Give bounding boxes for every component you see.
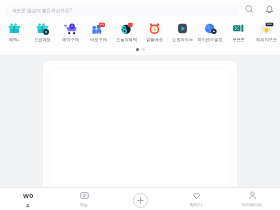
button[interactable]: 예약구매 (56, 18, 84, 44)
button[interactable]: 마이페이지 (224, 188, 280, 210)
staticText: wo (23, 191, 34, 201)
button[interactable]: 오픈예정 (28, 18, 56, 44)
staticText: 혜택+ (9, 37, 20, 43)
staticText: 찜하기 (190, 202, 202, 207)
button[interactable]: 새 글 작성 (112, 188, 168, 210)
staticText: 예약구매 (62, 37, 79, 42)
button[interactable]: 알뜰배송 (140, 18, 168, 44)
staticText: 새로운 일상이 필요하신가요? (12, 7, 72, 13)
button[interactable]: Notifications (259, 0, 280, 18)
staticText: 홈 (26, 203, 30, 208)
button[interactable]: 오늘의혜택 (112, 18, 140, 44)
button[interactable]: 찜하기 (168, 188, 224, 210)
button[interactable]: 하이엔드밀킷 (196, 18, 224, 44)
staticText: 쇼핑라이브 (172, 37, 193, 42)
staticText: 쿠폰존 (232, 37, 245, 42)
button[interactable]: 바로구매 (84, 18, 112, 44)
button[interactable]: 메뉴 (56, 188, 112, 210)
staticText: 메뉴 (80, 202, 88, 207)
button[interactable]: wo (0, 188, 56, 210)
button[interactable]: 새로운 일상이 필요하신가요? (6, 3, 239, 16)
button[interactable]: 혜택+ (0, 18, 28, 44)
staticText: 알뜰배송 (146, 37, 163, 42)
button[interactable]: 쇼핑라이브 (168, 18, 196, 44)
button[interactable]: 해외직구관 (252, 18, 280, 44)
button[interactable]: 쿠폰존 (224, 18, 252, 44)
staticText: 마이페이지 (242, 202, 262, 207)
button[interactable]: Search (239, 0, 259, 18)
staticText: 오픈예정 (34, 37, 51, 42)
staticText: 하이엔드밀킷 (197, 37, 223, 42)
staticText: 해외직구관 (256, 37, 277, 42)
staticText: 오늘의혜택 (116, 37, 137, 42)
staticText: 바로구매 (90, 37, 107, 42)
